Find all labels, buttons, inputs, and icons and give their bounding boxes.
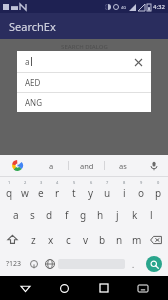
button[interactable]: ANG: [17, 93, 151, 112]
staticText: e: [38, 186, 44, 200]
staticText: a: [49, 161, 54, 171]
button[interactable]: 8: [116, 177, 133, 202]
button[interactable]: g: [75, 202, 92, 227]
button[interactable]: ?123: [2, 252, 26, 276]
staticText: ?123: [6, 259, 22, 269]
staticText: v: [83, 233, 89, 247]
button[interactable]: 6: [82, 177, 99, 202]
button[interactable]: l: [143, 202, 160, 227]
staticText: ANG: [25, 97, 43, 108]
button[interactable]: Home: [53, 277, 75, 299]
staticText: .: [132, 259, 135, 270]
button[interactable]: AED: [17, 73, 151, 92]
staticText: n: [116, 233, 123, 247]
staticText: b: [99, 233, 106, 247]
staticText: y: [88, 186, 94, 200]
staticText: j: [116, 208, 119, 222]
staticText: 4:32: [153, 3, 165, 11]
staticText: k: [132, 208, 138, 222]
staticText: w: [21, 186, 29, 200]
button[interactable]: Voice input: [140, 155, 168, 176]
staticText: SearchEx: [9, 19, 56, 34]
button[interactable]: b: [94, 227, 111, 252]
button[interactable]: Google: [0, 155, 34, 176]
staticText: 4: [56, 180, 59, 185]
staticText: x: [48, 233, 54, 247]
staticText: p: [155, 186, 162, 200]
button[interactable]: 4: [49, 177, 65, 202]
staticText: as: [119, 161, 127, 171]
button[interactable]: a: [17, 51, 151, 72]
staticText: 0: [157, 180, 160, 185]
staticText: q: [6, 186, 13, 200]
button[interactable]: k: [126, 202, 143, 227]
staticText: l: [150, 208, 153, 222]
staticText: 8: [123, 180, 126, 185]
staticText: SEARCH DIALOG: [61, 43, 108, 51]
button[interactable]: v: [77, 227, 94, 252]
staticText: t: [72, 186, 76, 200]
staticText: a: [25, 56, 30, 67]
staticText: z: [31, 233, 36, 247]
button[interactable]: j: [109, 202, 126, 227]
staticText: 7: [106, 180, 109, 185]
button[interactable]: a: [8, 202, 24, 227]
button[interactable]: x: [42, 227, 60, 252]
staticText: r: [55, 186, 60, 200]
button[interactable]: Shift: [1, 227, 24, 252]
staticText: i: [123, 186, 126, 200]
staticText: c: [66, 233, 71, 247]
staticText: f: [65, 208, 69, 222]
staticText: d: [46, 208, 53, 222]
button[interactable]: 7: [99, 177, 116, 202]
staticText: 9: [140, 180, 143, 185]
staticText: m: [132, 233, 142, 247]
button[interactable]: Change language: [42, 252, 58, 276]
staticText: 1: [8, 180, 11, 185]
button[interactable]: h: [92, 202, 109, 227]
staticText: 6: [90, 180, 93, 185]
staticText: and: [80, 161, 94, 171]
button[interactable]: d: [41, 202, 58, 227]
staticText: 3: [40, 180, 43, 185]
button[interactable]: .: [125, 252, 141, 276]
button[interactable]: 2: [17, 177, 33, 202]
button[interactable]: Keyboard: [132, 277, 154, 299]
button[interactable]: 9: [133, 177, 150, 202]
staticText: a: [13, 208, 19, 222]
button[interactable]: Emoji: [26, 252, 42, 276]
staticText: o: [138, 186, 145, 200]
button[interactable]: m: [128, 227, 145, 252]
button[interactable]: n: [111, 227, 128, 252]
staticText: AED: [25, 77, 41, 88]
button[interactable]: 5: [65, 177, 82, 202]
button[interactable]: c: [60, 227, 77, 252]
button[interactable]: and: [69, 155, 104, 176]
button[interactable]: Recent apps: [93, 277, 115, 299]
staticText: s: [30, 208, 35, 222]
button[interactable]: 0: [150, 177, 167, 202]
button[interactable]: z: [24, 227, 42, 252]
button[interactable]: as: [105, 155, 140, 176]
button[interactable]: Search: [141, 252, 166, 276]
staticText: 4G: [121, 5, 127, 10]
staticText: h: [97, 208, 104, 222]
button[interactable]: s: [24, 202, 41, 227]
staticText: u: [104, 186, 111, 200]
button[interactable]: Backspace: [145, 227, 167, 252]
button[interactable]: 1: [1, 177, 17, 202]
staticText: 2: [24, 180, 27, 185]
button[interactable]: a: [34, 155, 68, 176]
button[interactable]: 3: [33, 177, 49, 202]
button[interactable]: f: [58, 202, 75, 227]
staticText: 5: [73, 180, 76, 185]
staticText: g: [80, 208, 87, 222]
button[interactable]: Clear search: [131, 55, 145, 69]
button[interactable]: Back: [14, 277, 36, 299]
